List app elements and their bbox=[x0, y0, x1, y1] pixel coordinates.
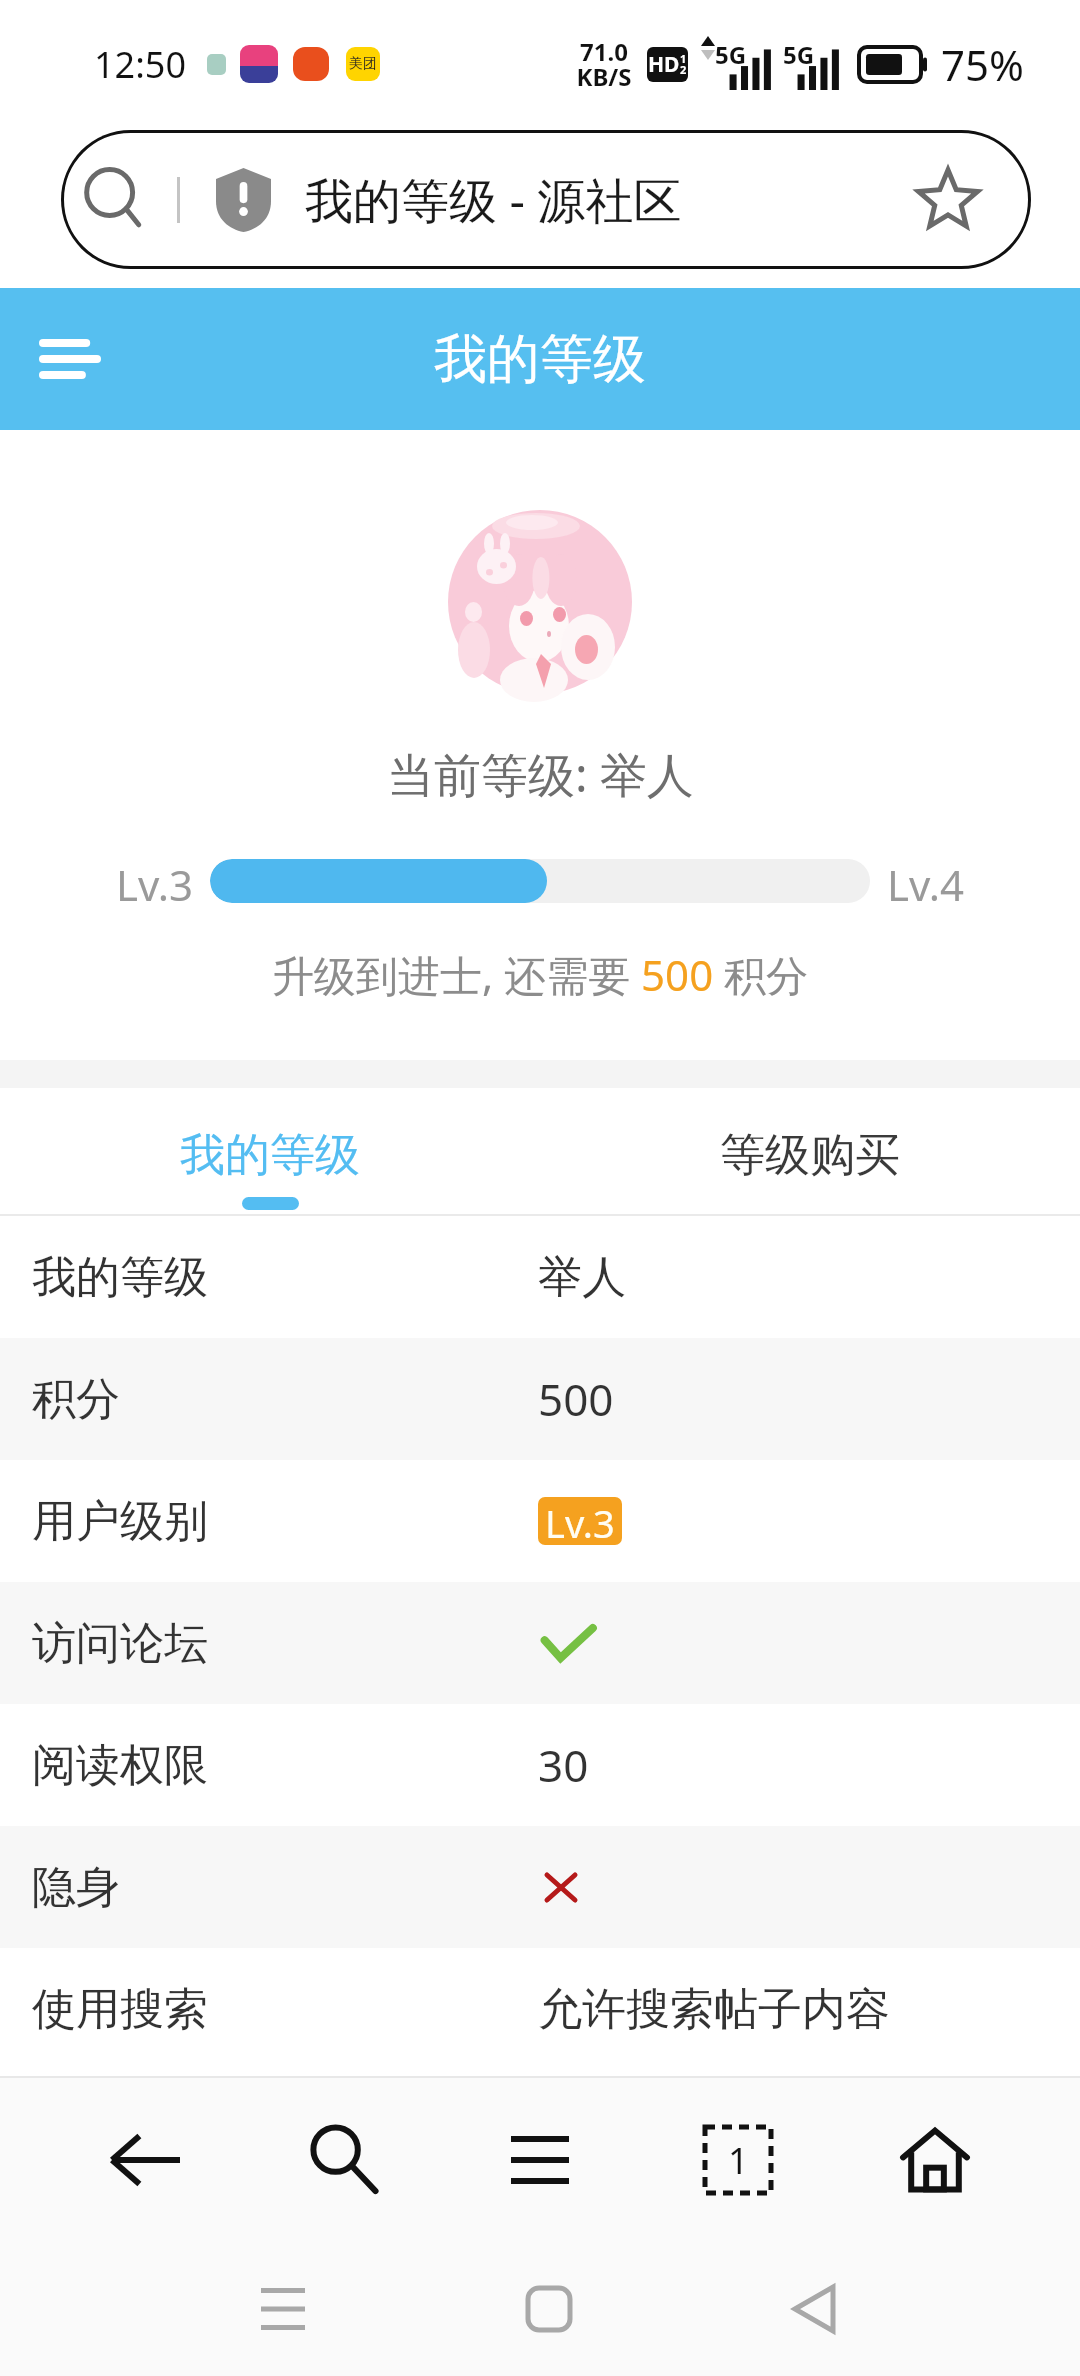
button[interactable]: Tabs bbox=[683, 2105, 793, 2215]
button[interactable]: 用户级别 bbox=[0, 1460, 1080, 1582]
staticText: 使用搜索 bbox=[32, 1982, 208, 2037]
staticText: 美团 bbox=[349, 55, 377, 73]
button[interactable]: Search bbox=[288, 2105, 398, 2215]
button[interactable]: Recents bbox=[238, 2264, 328, 2354]
staticText: 隐身 bbox=[32, 1860, 120, 1915]
button[interactable]: 我的等级 bbox=[0, 1216, 1080, 1338]
staticText: 允许搜索帖子内容 bbox=[538, 1982, 890, 2037]
button[interactable]: Home bbox=[504, 2264, 594, 2354]
button[interactable]: Back bbox=[90, 2105, 200, 2215]
staticText: 71.0 KB/S bbox=[576, 35, 632, 93]
button[interactable]: 阅读权限 bbox=[0, 1704, 1080, 1826]
staticText: 1 bbox=[728, 2136, 749, 2185]
staticText: Lv.4 bbox=[887, 856, 964, 906]
staticText: 1 2 bbox=[680, 51, 687, 78]
staticText: 当前等级: 举人 bbox=[387, 742, 694, 806]
staticText: 用户级别 bbox=[32, 1494, 208, 1549]
staticText: 5G bbox=[715, 38, 747, 71]
button[interactable]: 积分 bbox=[0, 1338, 1080, 1460]
staticText: Lv.3 bbox=[116, 856, 193, 906]
staticText: 升级到进士, 还需要 500 积分 bbox=[272, 946, 809, 1003]
button[interactable]: Menu bbox=[485, 2105, 595, 2215]
button[interactable]: 访问论坛 bbox=[0, 1582, 1080, 1704]
staticText: 积分 bbox=[32, 1372, 120, 1427]
staticText: 我的等级 bbox=[32, 1250, 208, 1305]
staticText: 我的等级 - 源社区 bbox=[305, 167, 682, 233]
staticText: 5G bbox=[783, 38, 815, 71]
staticText: HD bbox=[648, 50, 680, 79]
button[interactable]: 使用搜索 bbox=[0, 1948, 1080, 2070]
staticText: 75% bbox=[941, 36, 1024, 93]
button[interactable]: 我的等级 - 源社区 bbox=[61, 130, 1031, 269]
button[interactable]: Back bbox=[769, 2264, 859, 2354]
staticText: 我的等级 bbox=[180, 1127, 360, 1184]
button[interactable]: Home bbox=[880, 2105, 990, 2215]
button[interactable]: 隐身 bbox=[0, 1826, 1080, 1948]
staticText: 我的等级 bbox=[434, 326, 646, 393]
staticText: 30 bbox=[538, 1735, 589, 1795]
other: Bookmark bbox=[917, 169, 979, 231]
staticText: 举人 bbox=[538, 1250, 626, 1305]
staticText: 阅读权限 bbox=[32, 1738, 208, 1793]
button[interactable]: Menu bbox=[22, 311, 118, 407]
button[interactable]: 我的等级 bbox=[0, 1088, 540, 1214]
button[interactable]: 等级购买 bbox=[540, 1088, 1080, 1214]
staticText: Lv.3 bbox=[545, 1497, 615, 1545]
staticText: 访问论坛 bbox=[32, 1616, 208, 1671]
staticText: 等级购买 bbox=[720, 1127, 900, 1184]
staticText: 500 bbox=[538, 1369, 614, 1429]
staticText: 12:50 bbox=[94, 40, 187, 89]
